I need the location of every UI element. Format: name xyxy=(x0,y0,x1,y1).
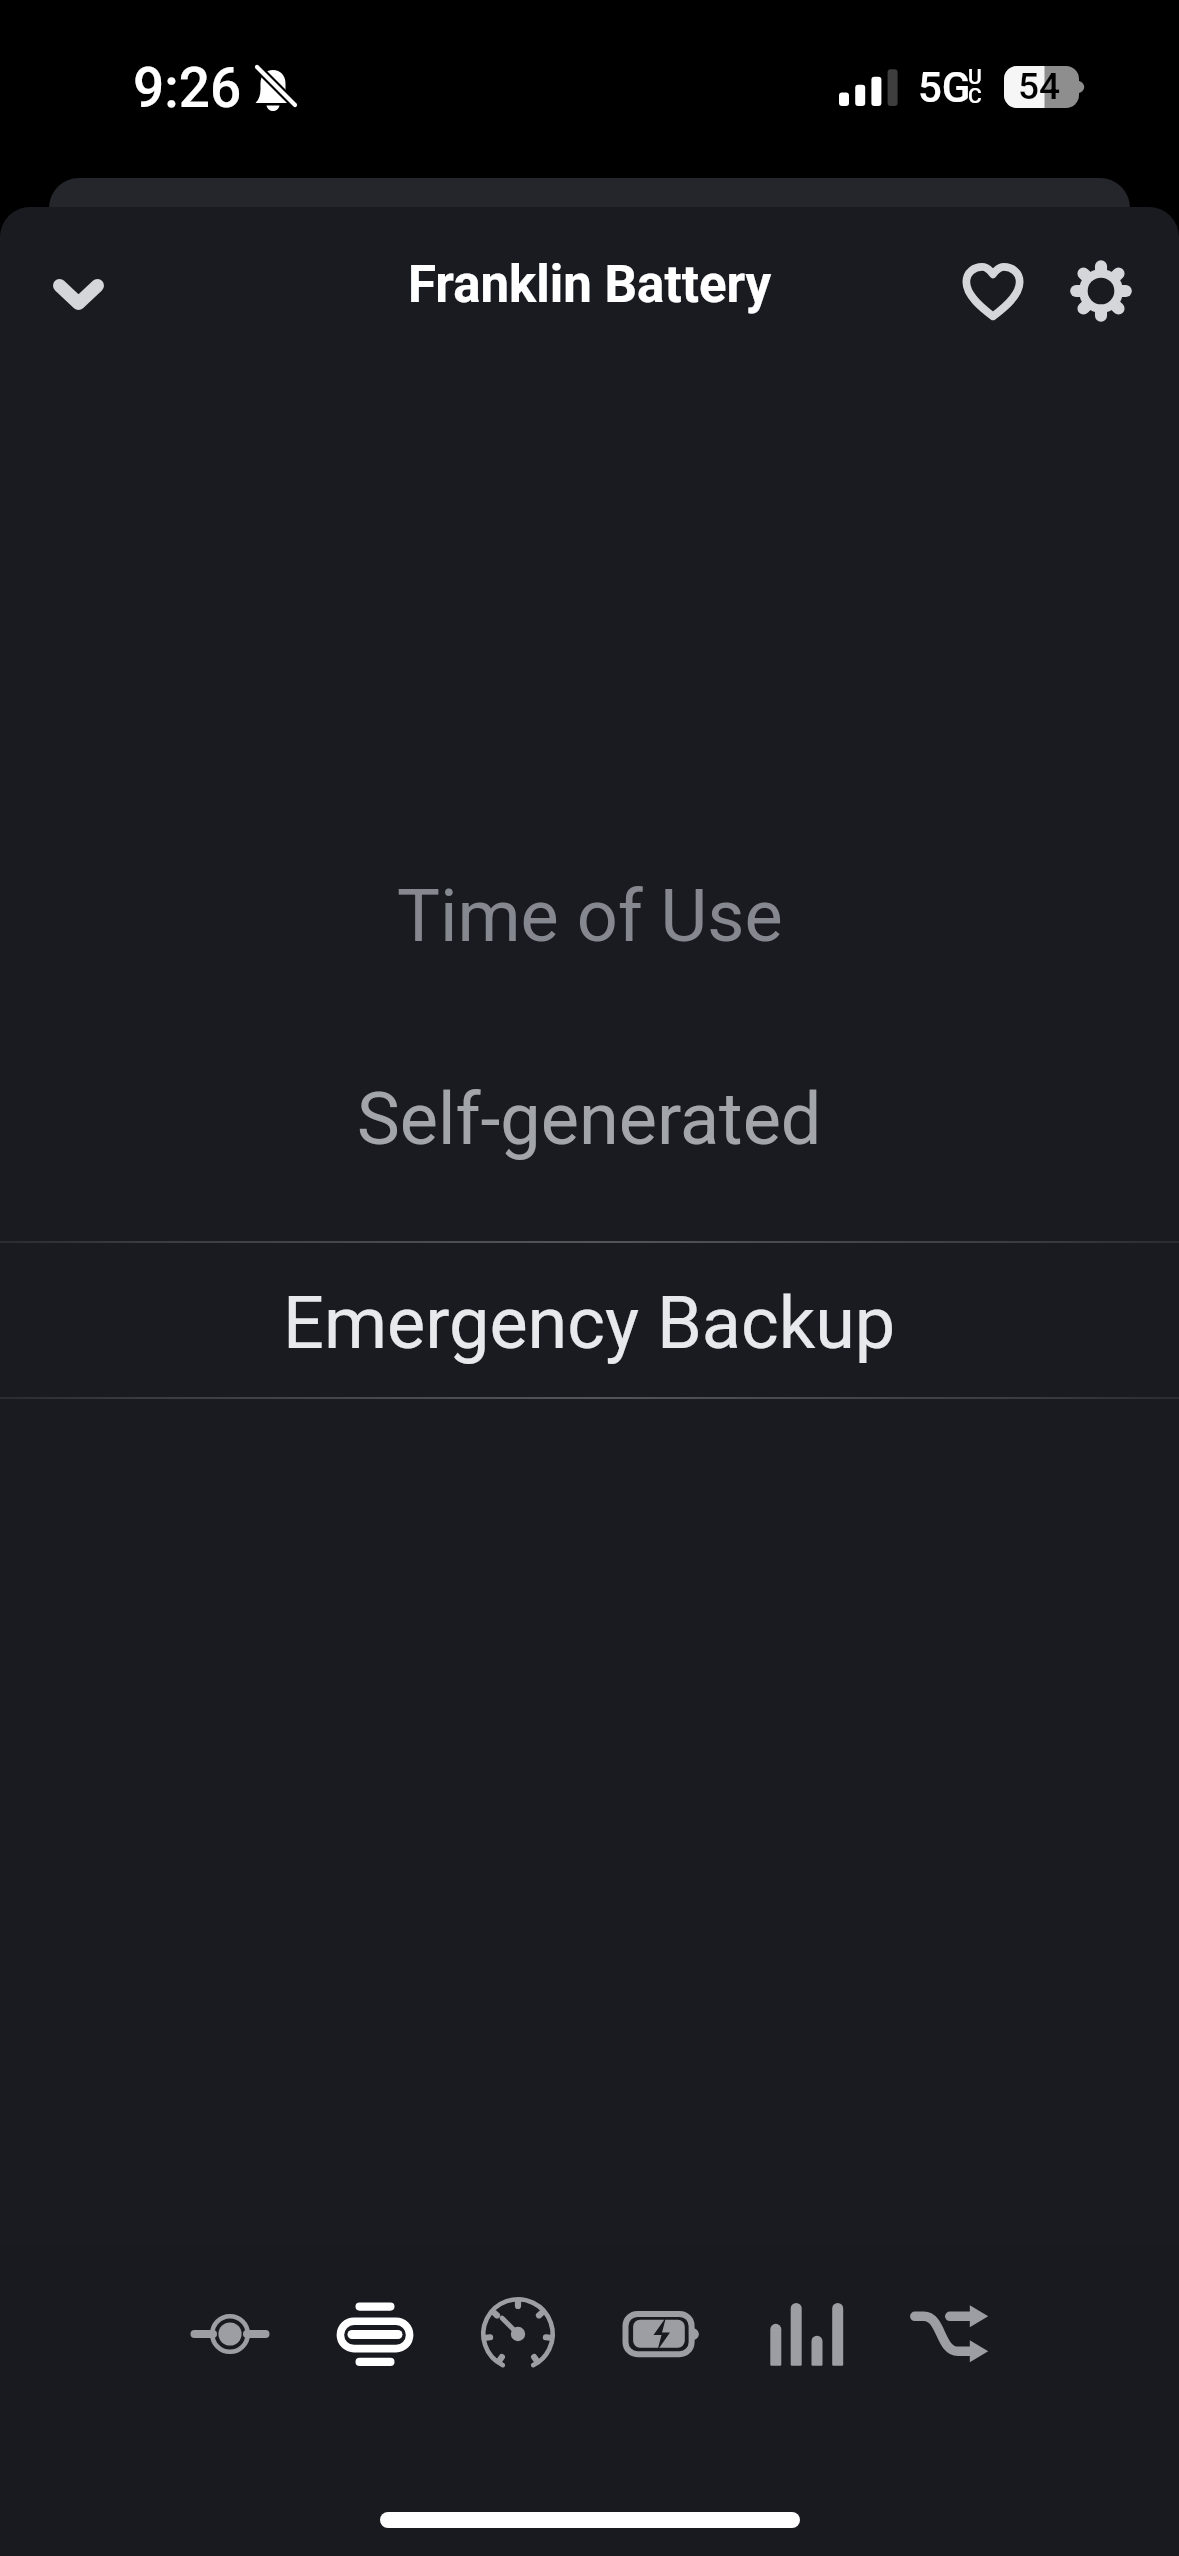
staticText: Emergency Backup xyxy=(283,1281,896,1365)
staticText: 5G xyxy=(918,63,971,112)
staticText: Time of Use xyxy=(397,874,783,958)
button[interactable]: Collapse xyxy=(18,234,138,354)
staticText: 54 xyxy=(1018,65,1061,108)
button[interactable]: Statistics xyxy=(749,2277,863,2391)
staticText: C xyxy=(968,84,982,109)
button[interactable]: Settings xyxy=(1041,231,1161,351)
button[interactable]: Favorite xyxy=(933,231,1053,351)
button[interactable]: Energy flow xyxy=(892,2277,1006,2391)
staticText: Franklin Battery xyxy=(408,255,772,315)
button[interactable]: Battery xyxy=(318,2277,432,2391)
button[interactable]: Power meter xyxy=(461,2277,575,2391)
button[interactable]: Self-generated xyxy=(0,1041,1179,1197)
button[interactable]: Charging xyxy=(605,2277,719,2391)
button[interactable]: Emergency Backup xyxy=(0,1245,1179,1401)
staticText: U xyxy=(968,65,982,90)
staticText: Self-generated xyxy=(357,1077,822,1161)
button[interactable]: Circuits xyxy=(173,2277,287,2391)
staticText: 9:26 xyxy=(133,56,242,120)
button[interactable]: Time of Use xyxy=(0,838,1179,994)
